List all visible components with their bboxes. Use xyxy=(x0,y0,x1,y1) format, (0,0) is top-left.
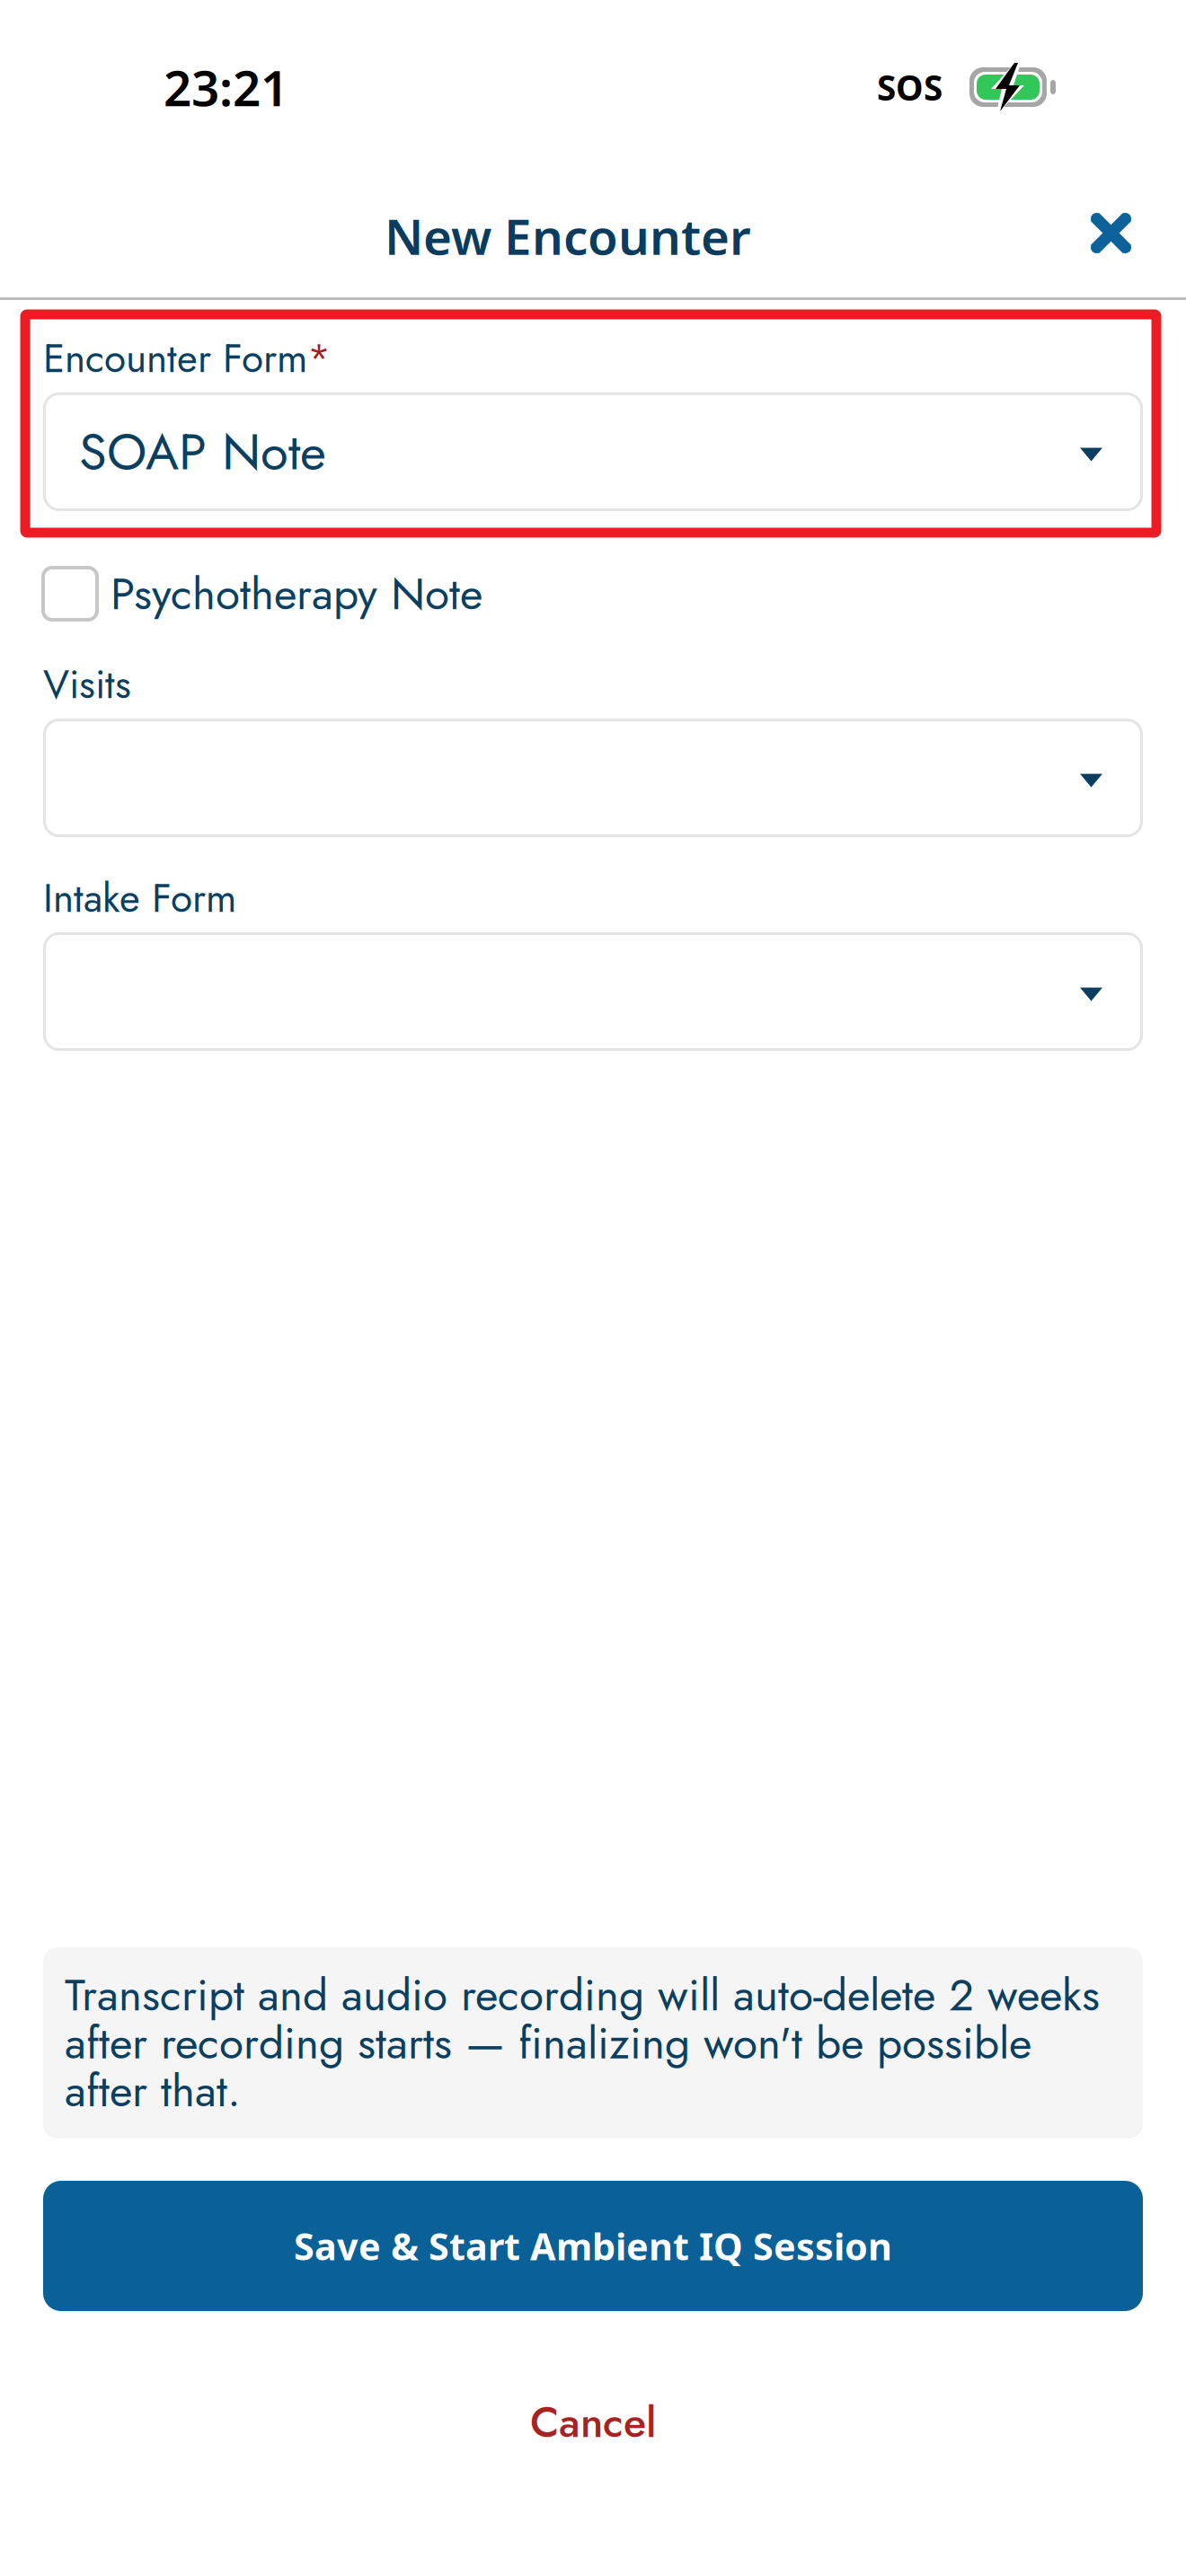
staticText: Intake Form xyxy=(43,870,236,927)
button[interactable]: Psychotherapy Note xyxy=(0,568,1186,620)
staticText: 23:21 xyxy=(164,55,288,120)
button[interactable]: SOAP Note xyxy=(43,393,1143,511)
button[interactable]: Close xyxy=(1076,204,1146,268)
staticText: Encounter Form xyxy=(43,330,307,387)
staticText: * xyxy=(307,330,331,387)
button[interactable]: Cancel xyxy=(0,2386,1186,2458)
staticText: SOS xyxy=(877,64,943,110)
staticText: Visits xyxy=(43,656,131,713)
button[interactable]: Save & Start Ambient IQ Session xyxy=(0,2181,1186,2311)
staticText: Save & Start Ambient IQ Session xyxy=(294,2221,892,2271)
staticText: SOAP Note xyxy=(79,415,326,488)
staticText: New Encounter xyxy=(385,203,751,268)
button[interactable] xyxy=(43,719,1143,837)
staticText: Cancel xyxy=(530,2392,656,2453)
staticText: Psychotherapy Note xyxy=(111,562,482,626)
staticText: Transcript and audio recording will auto… xyxy=(65,1963,1100,2123)
button[interactable] xyxy=(43,932,1143,1051)
